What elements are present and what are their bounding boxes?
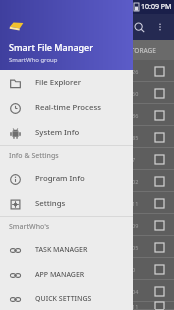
staticText: Program Info — [35, 173, 85, 184]
staticText: 09 — [132, 222, 139, 229]
button[interactable]: File Explorer — [0, 70, 133, 95]
staticText: 11 — [132, 200, 139, 207]
staticText: 05 — [132, 244, 139, 251]
staticText: File Explorer — [35, 77, 82, 88]
staticText: QUICK SETTINGS — [35, 294, 92, 304]
staticText: INTERNAL STORAGE — [94, 46, 156, 55]
staticText: Smart File Manager — [9, 41, 94, 53]
staticText: SmartWho group — [9, 56, 58, 64]
button[interactable]: 60 — [0, 82, 174, 104]
button[interactable]: TASK MANAGER — [0, 237, 133, 262]
button[interactable]: 26 — [0, 60, 174, 82]
staticText: Info & Settings — [9, 151, 59, 161]
button[interactable]: 7 — [0, 148, 174, 170]
staticText: TASK MANAGER — [35, 245, 88, 255]
button[interactable]: 09 — [0, 214, 174, 236]
button[interactable]: 02 — [0, 170, 174, 192]
button[interactable]: Program Info — [0, 166, 133, 191]
staticText: 60 — [132, 90, 139, 97]
button[interactable]: APP MANAGER — [0, 262, 133, 287]
button[interactable]: 85 — [0, 126, 174, 148]
button[interactable]: Search — [128, 16, 150, 38]
button[interactable]: 36 — [0, 104, 174, 126]
button[interactable]: System Info — [0, 120, 133, 145]
button[interactable]: 0 — [0, 258, 174, 280]
staticText: 10:09 PM — [141, 2, 172, 12]
staticText: 0 — [132, 266, 136, 273]
staticText: 11 — [132, 303, 139, 310]
button[interactable]: 11 — [0, 192, 174, 214]
button[interactable]: 11 — [0, 302, 174, 310]
staticText: 36 — [132, 112, 139, 119]
button[interactable]: Settings — [0, 191, 133, 216]
staticText: 7 — [132, 156, 136, 163]
button[interactable]: 04 — [0, 280, 174, 302]
staticText: Settings — [35, 198, 66, 209]
button[interactable]: QUICK SETTINGS — [0, 287, 133, 310]
staticText: 26 — [132, 68, 139, 75]
staticText: APP MANAGER — [35, 270, 85, 280]
staticText: 04 — [132, 288, 139, 295]
button[interactable]: 05 — [0, 236, 174, 258]
staticText: Real-time Process — [35, 102, 101, 113]
staticText: System Info — [35, 127, 80, 138]
button[interactable]: More options — [150, 17, 170, 37]
staticText: SmartWho's — [9, 222, 50, 232]
staticText: 85 — [132, 134, 139, 141]
button[interactable]: Real-time Process — [0, 95, 133, 120]
staticText: 02 — [132, 178, 139, 185]
